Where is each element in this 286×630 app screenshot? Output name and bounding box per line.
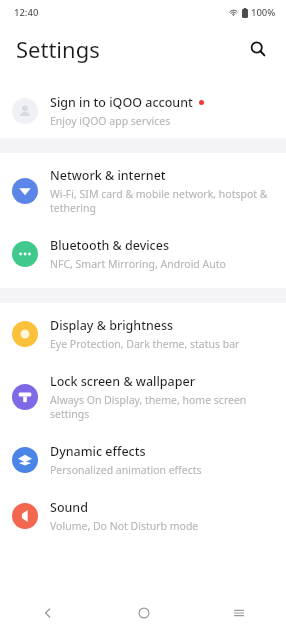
button[interactable]: Home <box>96 596 191 630</box>
button[interactable]: Back <box>0 596 96 630</box>
staticText: Bluetooth & devices <box>50 237 169 254</box>
staticText: Eye Protection, Dark theme, status bar <box>50 337 240 351</box>
staticText: Dynamic effects <box>50 443 146 460</box>
staticText: 12:40 <box>14 6 39 19</box>
staticText: Display & brightness <box>50 317 174 334</box>
button[interactable]: Display & brightness <box>0 306 286 362</box>
button[interactable]: Network & internet <box>0 156 286 226</box>
button[interactable]: Bluetooth & devices <box>0 226 286 282</box>
button[interactable]: Lock screen & wallpaper <box>0 362 286 432</box>
button[interactable]: Sound <box>0 488 286 544</box>
staticText: Sound <box>50 499 88 516</box>
staticText: Lock screen & wallpaper <box>50 373 195 390</box>
button[interactable]: Dynamic effects <box>0 432 286 488</box>
staticText: Enjoy iQOO app services <box>50 114 171 128</box>
staticText: Settings <box>16 34 100 64</box>
button[interactable]: Search <box>240 31 276 67</box>
staticText: Volume, Do Not Disturb mode <box>50 519 199 533</box>
staticText: Sign in to iQOO account <box>50 94 193 111</box>
button[interactable]: Recent apps <box>191 596 286 630</box>
staticText: Always On Display, theme, home screen se… <box>50 393 268 421</box>
staticText: Network & internet <box>50 167 166 184</box>
staticText: NFC, Smart Mirroring, Android Auto <box>50 257 226 271</box>
button[interactable]: Sign in to iQOO account <box>0 84 286 138</box>
staticText: Wi-Fi, SIM card & mobile network, hotspo… <box>50 187 268 215</box>
staticText: Personalized animation effects <box>50 463 202 477</box>
staticText: 100% <box>251 6 276 19</box>
